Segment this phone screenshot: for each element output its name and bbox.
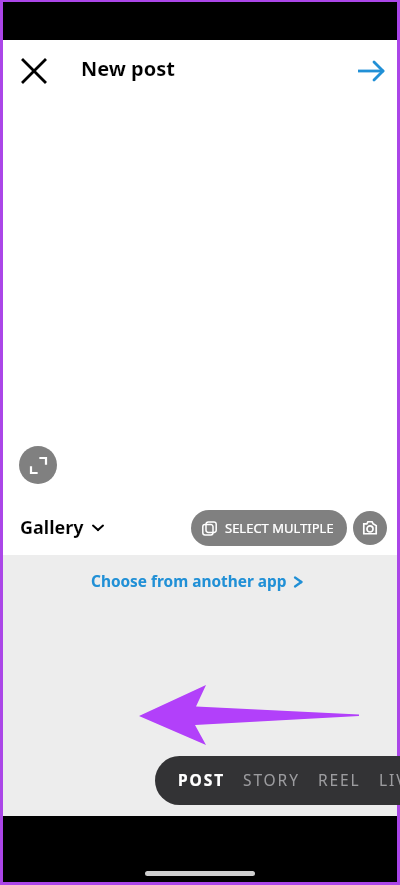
- staticText: REEL: [318, 769, 361, 790]
- button[interactable]: Expand: [19, 446, 57, 484]
- button[interactable]: Choose from another app: [85, 568, 310, 595]
- staticText: SELECT MULTIPLE: [225, 519, 334, 537]
- button[interactable]: Next: [349, 49, 393, 93]
- staticText: New post: [81, 55, 175, 82]
- staticText: LIVE: [379, 769, 400, 790]
- button[interactable]: STORY: [234, 756, 309, 804]
- button[interactable]: POST: [169, 756, 234, 804]
- button[interactable]: SELECT MULTIPLE: [191, 510, 347, 546]
- staticText: Gallery: [20, 515, 84, 540]
- button[interactable]: Gallery: [14, 511, 110, 544]
- staticText: Choose from another app: [91, 571, 287, 592]
- button[interactable]: Camera: [353, 511, 387, 545]
- staticText: STORY: [243, 769, 300, 790]
- staticText: POST: [178, 769, 225, 790]
- button[interactable]: Close: [12, 49, 56, 93]
- button[interactable]: LIVE: [370, 756, 400, 804]
- button[interactable]: REEL: [309, 756, 370, 804]
